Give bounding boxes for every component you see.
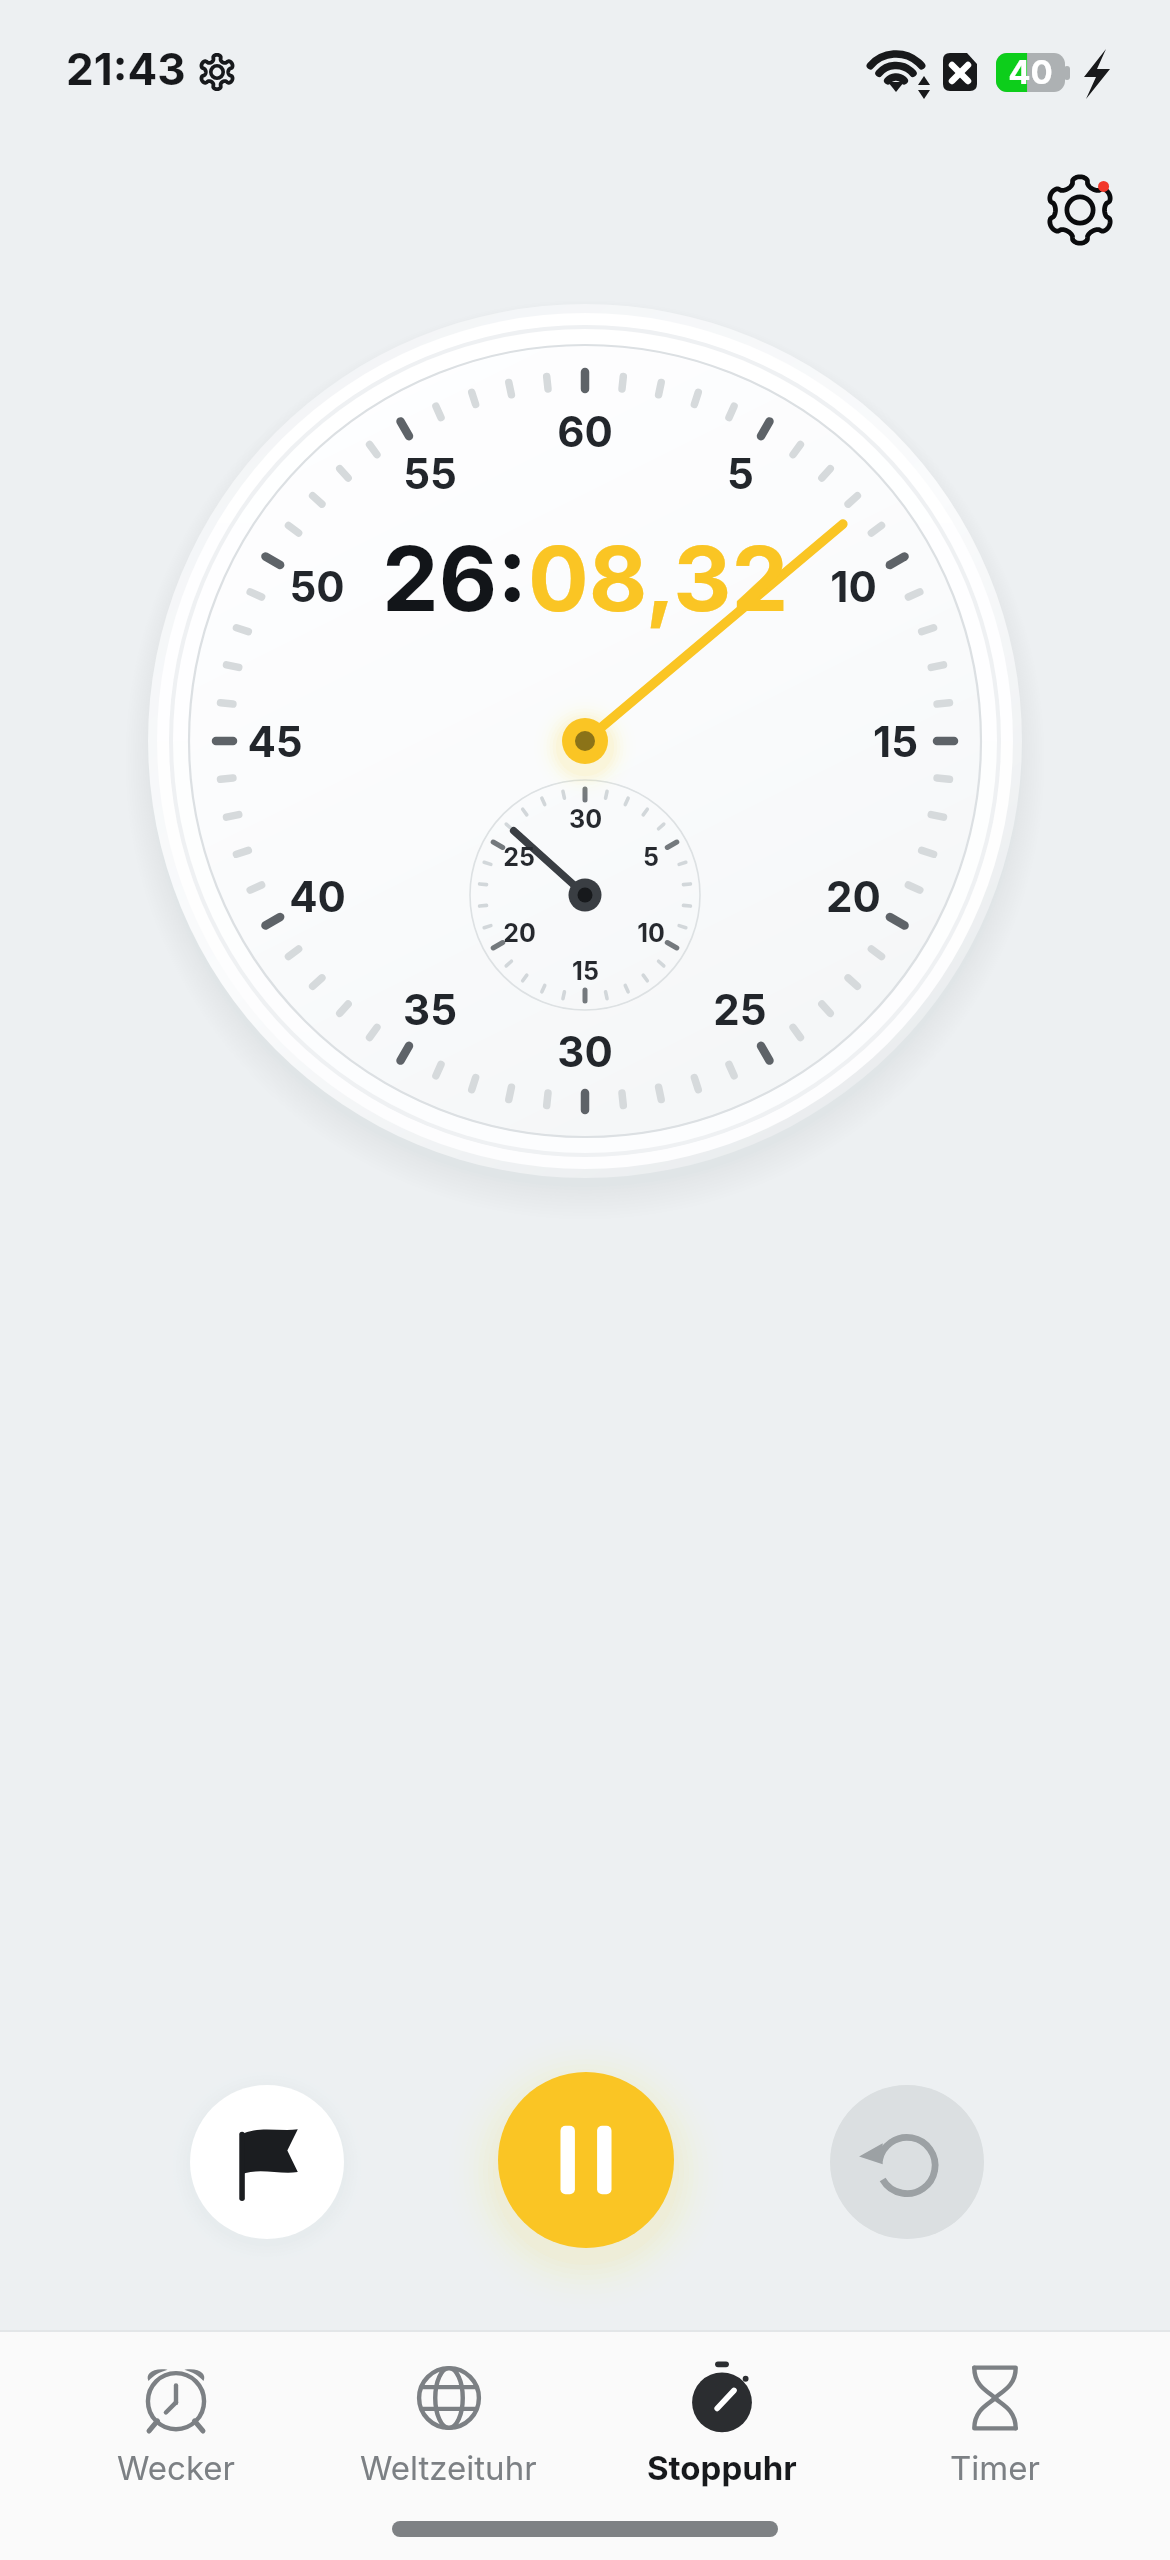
- staticText: 5: [727, 448, 754, 499]
- staticText: 35: [403, 984, 457, 1035]
- staticText: 21:43: [66, 42, 186, 95]
- staticText: Timer: [950, 2448, 1040, 2488]
- staticText: 20: [503, 918, 536, 948]
- staticText: 08,32: [528, 524, 789, 633]
- staticText: 26:: [382, 524, 528, 633]
- staticText: 10: [830, 561, 877, 612]
- staticText: 15: [873, 716, 918, 767]
- staticText: 25: [713, 984, 767, 1035]
- staticText: 25: [503, 842, 535, 872]
- button[interactable]: Pause: [498, 2072, 674, 2248]
- button[interactable]: Wecker: [39, 2330, 312, 2488]
- button[interactable]: Lap: [190, 2085, 344, 2239]
- staticText: 30: [557, 1026, 613, 1077]
- staticText: 20: [826, 871, 881, 922]
- button[interactable]: Stoppuhr: [585, 2330, 858, 2488]
- staticText: 55: [403, 448, 457, 499]
- staticText: Wecker: [117, 2448, 235, 2488]
- staticText: 40: [1008, 52, 1053, 92]
- staticText: Weltzeituhr: [360, 2448, 537, 2488]
- button[interactable]: Timer: [858, 2330, 1131, 2488]
- staticText: 50: [289, 561, 345, 612]
- staticText: 30: [569, 804, 602, 834]
- staticText: 5: [643, 842, 659, 872]
- staticText: 10: [637, 918, 665, 948]
- button[interactable]: Reset: [830, 2085, 984, 2239]
- button[interactable]: Settings: [1042, 172, 1118, 248]
- staticText: 45: [247, 716, 303, 767]
- staticText: 15: [572, 956, 599, 986]
- staticText: 40: [289, 871, 346, 922]
- button[interactable]: Weltzeituhr: [312, 2330, 585, 2488]
- staticText: Stoppuhr: [647, 2448, 797, 2488]
- staticText: 60: [557, 406, 613, 457]
